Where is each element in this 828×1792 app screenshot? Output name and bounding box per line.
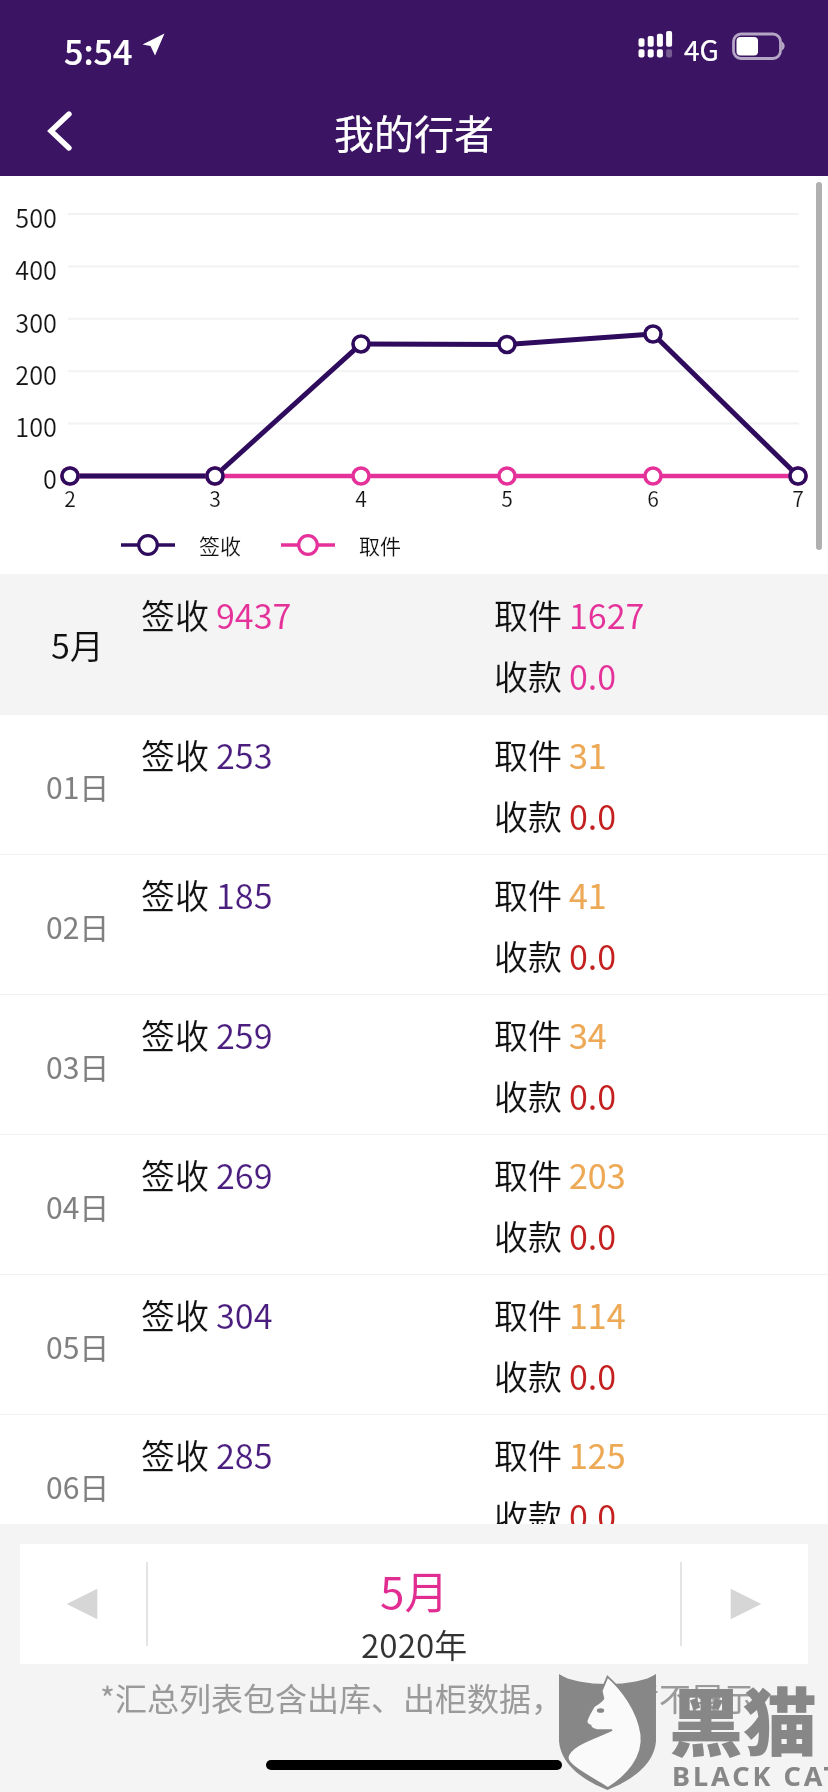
staticText: 06日	[46, 1464, 110, 1507]
staticText: 签收	[141, 1150, 209, 1199]
staticText: 04日	[46, 1184, 110, 1227]
staticText: 31	[569, 730, 607, 779]
staticText: 收款	[494, 1491, 562, 1540]
staticText: 签收	[199, 530, 241, 560]
staticText: 收款	[494, 1071, 562, 1120]
staticText: 0.0	[569, 651, 617, 700]
button[interactable]: 06日	[0, 1414, 828, 1554]
staticText: 03日	[46, 1044, 110, 1087]
staticText: 114	[569, 1290, 626, 1339]
staticText: 5月	[51, 620, 104, 669]
staticText: 签收	[141, 590, 209, 639]
staticText: 5	[487, 483, 527, 513]
staticText: 0.0	[569, 1211, 617, 1260]
staticText: 签收	[141, 730, 209, 779]
staticText: 取件	[494, 730, 562, 779]
staticText: 304	[216, 1290, 273, 1339]
staticText: 125	[569, 1430, 626, 1479]
button[interactable]: 05日	[0, 1274, 828, 1414]
staticText: 34	[569, 1010, 607, 1059]
staticText: 收款	[494, 791, 562, 840]
staticText: 9437	[216, 590, 292, 639]
button[interactable]: 04日	[0, 1134, 828, 1274]
staticText: 2	[50, 483, 90, 513]
staticText: 0.0	[569, 1071, 617, 1120]
staticText: 取件	[494, 590, 562, 639]
staticText: 签收	[141, 1010, 209, 1059]
staticText: 05日	[46, 1324, 110, 1367]
staticText: 签收	[141, 1290, 209, 1339]
staticText: 收款	[494, 651, 562, 700]
staticText: 4	[341, 483, 381, 513]
staticText: 400	[0, 251, 57, 287]
button[interactable]: Back	[0, 88, 100, 176]
staticText: 取件	[494, 1150, 562, 1199]
staticText: 3	[195, 483, 235, 513]
staticText: 01日	[46, 764, 110, 807]
staticText: BLACK CAT	[672, 1757, 828, 1792]
staticText: 我的行者	[334, 103, 494, 161]
staticText: 0.0	[569, 931, 617, 980]
staticText: 0	[0, 460, 57, 496]
staticText: 41	[569, 870, 607, 919]
staticText: 7	[778, 483, 818, 513]
staticText: 6	[633, 483, 673, 513]
button[interactable]: Previous month	[42, 1564, 122, 1644]
staticText: 0.0	[569, 1351, 617, 1400]
staticText: 取件	[494, 870, 562, 919]
button[interactable]: 01日	[0, 714, 828, 854]
staticText: 200	[0, 356, 57, 392]
staticText: 4G	[684, 29, 719, 70]
button[interactable]: 5月	[0, 574, 828, 714]
staticText: 269	[216, 1150, 273, 1199]
staticText: 签收	[141, 870, 209, 919]
staticText: 取件	[494, 1010, 562, 1059]
staticText: 500	[0, 199, 57, 235]
staticText: 取件	[494, 1290, 562, 1339]
staticText: 02日	[46, 904, 110, 947]
staticText: 取件	[494, 1430, 562, 1479]
staticText: 259	[216, 1010, 273, 1059]
staticText: 0.0	[569, 791, 617, 840]
staticText: 签收	[141, 1430, 209, 1479]
staticText: 5:54	[64, 26, 133, 75]
staticText: 收款	[494, 1211, 562, 1260]
button[interactable]: 03日	[0, 994, 828, 1134]
staticText: 收款	[494, 931, 562, 980]
staticText: 收款	[494, 1351, 562, 1400]
staticText: *汇总列表包含出库、出柜数据，明细暂不展示	[100, 1674, 755, 1720]
staticText: 5月	[380, 1558, 449, 1622]
staticText: 285	[216, 1430, 273, 1479]
staticText: 300	[0, 304, 57, 340]
staticText: 2020年	[361, 1620, 468, 1668]
staticText: 取件	[359, 530, 401, 560]
staticText: 185	[216, 870, 273, 919]
staticText: 黑猫	[669, 1664, 817, 1771]
staticText: 0.0	[569, 1491, 617, 1540]
button[interactable]: 02日	[0, 854, 828, 994]
staticText: 203	[569, 1150, 626, 1199]
staticText: 100	[0, 408, 57, 444]
button[interactable]: Next month	[706, 1564, 786, 1644]
staticText: 1627	[569, 590, 645, 639]
staticText: 253	[216, 730, 273, 779]
